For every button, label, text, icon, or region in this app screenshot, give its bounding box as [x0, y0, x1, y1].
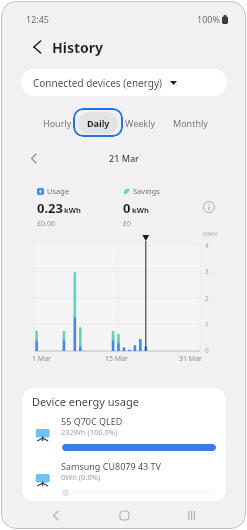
staticText: 21 Mar: [109, 152, 139, 164]
button[interactable]: Recent apps: [180, 504, 202, 526]
staticText: 12:45: [26, 13, 50, 25]
staticText: 15 Mar: [105, 354, 128, 364]
staticText: Connected devices (energy): [33, 76, 162, 90]
staticText: 0: [205, 346, 209, 355]
button[interactable]: Samsung CU8079 43 TV: [22, 433, 226, 478]
button[interactable]: Back: [45, 504, 67, 526]
staticText: Hourly: [43, 117, 72, 129]
button[interactable]: Previous day: [25, 149, 43, 167]
staticText: (kWh): [203, 230, 218, 237]
staticText: 0: [123, 199, 131, 217]
staticText: Usage: [47, 186, 70, 196]
staticText: kWh: [64, 205, 81, 215]
staticText: 31 Mar: [179, 354, 202, 364]
staticText: 0Wh (0.0%): [61, 472, 101, 482]
staticText: Samsung CU8079 43 TV: [61, 460, 161, 472]
button[interactable]: Connected devices (energy): [21, 69, 227, 96]
button[interactable]: Information: [200, 198, 218, 216]
staticText: 100%: [197, 13, 220, 25]
staticText: kWh: [132, 205, 149, 215]
button[interactable]: Weekly: [117, 111, 164, 135]
button[interactable]: Daily: [73, 108, 123, 137]
button[interactable]: Hourly: [35, 111, 80, 135]
staticText: Weekly: [125, 117, 156, 129]
button[interactable]: Monthly: [165, 111, 216, 135]
staticText: Savings: [133, 186, 160, 196]
staticText: 0.23: [37, 199, 63, 217]
staticText: Device energy usage: [32, 394, 139, 409]
button[interactable]: Navigate up: [27, 37, 47, 57]
staticText: 2: [205, 294, 209, 303]
staticText: Daily: [87, 117, 110, 129]
staticText: 232Wh (100.0%): [61, 427, 118, 437]
staticText: 4: [205, 241, 209, 250]
staticText: 1: [205, 320, 209, 329]
staticText: 3: [205, 267, 209, 276]
staticText: 1 Mar: [32, 354, 51, 364]
staticText: 55 Q70C QLED: [61, 415, 123, 427]
staticText: £0: [123, 219, 132, 229]
staticText: £0.06: [37, 219, 55, 229]
staticText: Monthly: [173, 117, 208, 129]
button[interactable]: 55 Q70C QLED: [22, 388, 226, 433]
staticText: History: [52, 38, 104, 57]
button[interactable]: Home: [113, 504, 135, 526]
